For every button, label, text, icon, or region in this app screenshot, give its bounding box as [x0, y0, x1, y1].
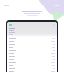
button[interactable] [7, 37, 57, 40]
button[interactable] [7, 49, 57, 52]
button[interactable] [7, 43, 57, 46]
button[interactable] [7, 52, 57, 55]
button[interactable] [7, 61, 57, 64]
button[interactable] [7, 40, 57, 43]
button[interactable] [7, 46, 57, 49]
button[interactable] [7, 55, 57, 58]
button[interactable] [7, 70, 57, 72]
button[interactable] [7, 67, 57, 70]
button[interactable] [7, 58, 57, 61]
button[interactable] [7, 64, 57, 67]
